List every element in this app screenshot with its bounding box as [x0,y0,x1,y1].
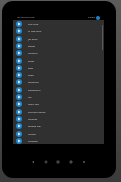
staticText: The Message Guide [17,16,35,19]
button[interactable]: It's [13,93,104,100]
staticText: Is Like Man [28,29,42,32]
staticText: Blackberry [28,88,41,91]
staticText: Fat and Moose [28,110,46,113]
button[interactable]: Bow [13,64,104,71]
staticText: Preview [88,16,95,19]
button[interactable]: Fat and Moose [13,108,104,115]
button[interactable]: Enter [13,57,104,64]
staticText: Enter [28,59,35,62]
button[interactable]: Monkey [13,115,104,122]
button[interactable]: Rolling Off [13,122,104,129]
staticText: The Lord [28,22,39,25]
staticText: Bomb [28,44,36,47]
staticText: Autumn [28,51,38,54]
button[interactable]: Preview [88,15,100,20]
button[interactable]: After The [13,100,104,107]
button[interactable]: Recents [54,158,62,166]
button[interactable]: Volume [80,158,88,166]
button[interactable]: The Lord [13,20,104,27]
staticText: Ahead [28,132,36,135]
staticText: Window [28,139,38,142]
button[interactable]: Screenshot [67,158,75,166]
button[interactable]: Bomb [13,42,104,49]
button[interactable]: Window [13,137,104,144]
button[interactable]: Info [96,16,100,20]
staticText: Jot Item [28,37,38,40]
button[interactable]: Received [13,78,104,85]
button[interactable]: Jot Item [13,35,104,42]
staticText: Feed [28,73,34,76]
button[interactable]: Is Like Man [13,27,104,34]
button[interactable]: Home [42,158,50,166]
button[interactable]: Feed [13,71,104,78]
button[interactable]: The Message Guide [17,15,51,20]
staticText: After The [28,102,39,105]
button[interactable]: Blackberry [13,86,104,93]
staticText: Rolling Off [28,124,41,127]
staticText: Bow [28,66,34,69]
staticText: Received [28,80,39,83]
staticText: Monkey [28,117,38,120]
button[interactable]: Autumn [13,49,104,56]
staticText: It's [28,95,32,98]
button[interactable]: Ahead [13,130,104,137]
button[interactable]: Back [29,158,37,166]
